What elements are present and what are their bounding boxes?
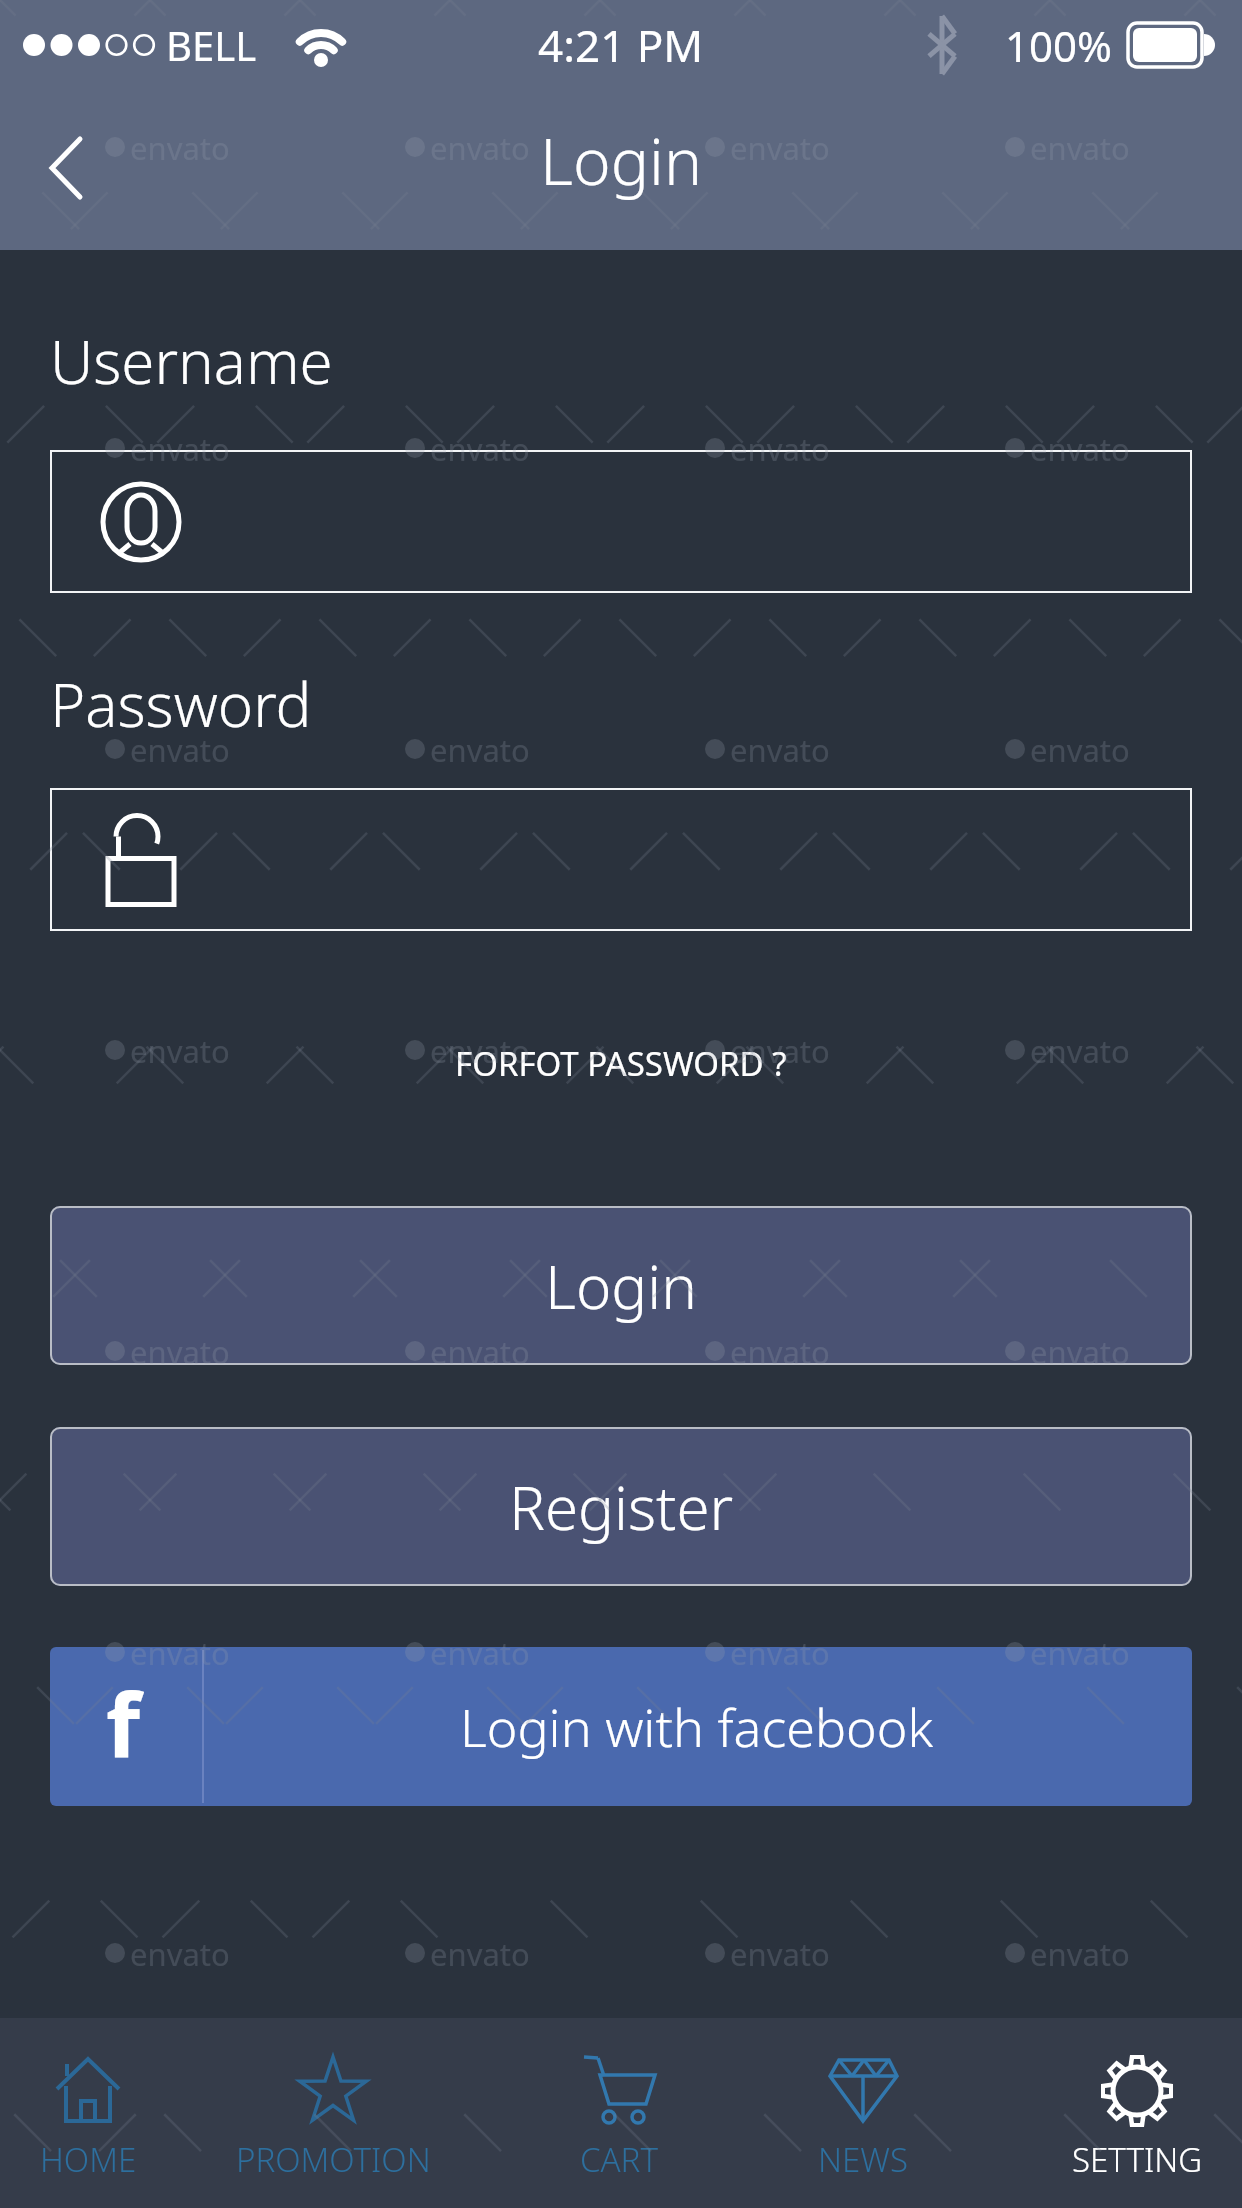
- staticText: f: [106, 1663, 141, 1783]
- staticText: Register: [509, 1466, 734, 1548]
- staticText: envato: [730, 127, 830, 169]
- button[interactable]: CART: [499, 2018, 739, 2208]
- staticText: BELL: [166, 18, 257, 72]
- staticText: envato: [430, 428, 530, 470]
- staticText: envato: [730, 729, 830, 771]
- button[interactable]: [50, 788, 1192, 931]
- button[interactable]: SETTING: [1017, 2018, 1242, 2208]
- staticText: PROMOTION: [236, 2137, 431, 2182]
- staticText: Password: [50, 663, 312, 745]
- button[interactable]: Login: [50, 1206, 1192, 1365]
- staticText: envato: [730, 1030, 830, 1072]
- staticText: envato: [430, 1331, 530, 1373]
- staticText: SETTING: [1072, 2137, 1203, 2182]
- button[interactable]: PROMOTION: [213, 2018, 453, 2208]
- staticText: envato: [1030, 729, 1130, 771]
- staticText: envato: [430, 1933, 530, 1975]
- staticText: HOME: [40, 2137, 137, 2182]
- button[interactable]: [40, 134, 100, 194]
- staticText: envato: [130, 127, 230, 169]
- staticText: envato: [430, 1632, 530, 1674]
- staticText: envato: [130, 1632, 230, 1674]
- staticText: envato: [430, 1030, 530, 1072]
- staticText: envato: [1030, 428, 1130, 470]
- button[interactable]: Register: [50, 1427, 1192, 1586]
- staticText: CART: [580, 2137, 658, 2182]
- staticText: envato: [730, 1933, 830, 1975]
- staticText: Login: [545, 1245, 697, 1327]
- staticText: envato: [130, 428, 230, 470]
- staticText: envato: [1030, 1933, 1130, 1975]
- staticText: envato: [1030, 1632, 1130, 1674]
- staticText: envato: [1030, 1030, 1130, 1072]
- staticText: envato: [130, 729, 230, 771]
- button[interactable]: NEWS: [743, 2018, 983, 2208]
- button[interactable]: [50, 450, 1192, 593]
- staticText: envato: [730, 428, 830, 470]
- staticText: envato: [730, 1331, 830, 1373]
- staticText: envato: [130, 1933, 230, 1975]
- staticText: envato: [130, 1331, 230, 1373]
- staticText: envato: [430, 127, 530, 169]
- staticText: envato: [1030, 127, 1130, 169]
- button[interactable]: FORFOT PASSWORD ?: [455, 1041, 787, 1086]
- staticText: envato: [730, 1632, 830, 1674]
- staticText: NEWS: [818, 2137, 908, 2182]
- staticText: Login with facebook: [460, 1691, 934, 1762]
- staticText: envato: [130, 1030, 230, 1072]
- staticText: Username: [50, 320, 333, 402]
- staticText: envato: [1030, 1331, 1130, 1373]
- staticText: envato: [430, 729, 530, 771]
- staticText: 100%: [1005, 17, 1112, 74]
- staticText: 4:21 PM: [538, 15, 704, 75]
- button[interactable]: HOME: [0, 2018, 208, 2208]
- button[interactable]: f: [50, 1647, 1192, 1806]
- staticText: Login: [540, 117, 702, 204]
